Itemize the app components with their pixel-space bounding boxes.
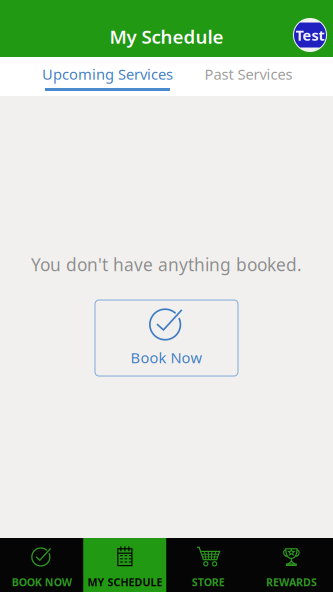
button[interactable]: REWARDS (250, 538, 333, 592)
staticText: My Schedule (109, 24, 223, 49)
button[interactable]: MY SCHEDULE (83, 538, 166, 592)
staticText: Test (295, 25, 324, 45)
button[interactable]: Past Services (206, 57, 291, 96)
staticText: Past Services (204, 64, 292, 84)
button[interactable]: Book Now (95, 300, 238, 376)
staticText: Book Now (130, 348, 202, 367)
button[interactable]: BOOK NOW (0, 538, 83, 592)
staticText: STORE (192, 575, 225, 589)
button[interactable]: STORE (166, 538, 250, 592)
staticText: Upcoming Services (42, 64, 173, 84)
staticText: MY SCHEDULE (87, 575, 162, 589)
staticText: REWARDS (266, 575, 317, 589)
button[interactable]: Upcoming Services (45, 57, 170, 96)
staticText: BOOK NOW (12, 575, 72, 589)
staticText: You don't have anything booked. (31, 253, 302, 276)
button[interactable]: Profile (293, 18, 327, 52)
